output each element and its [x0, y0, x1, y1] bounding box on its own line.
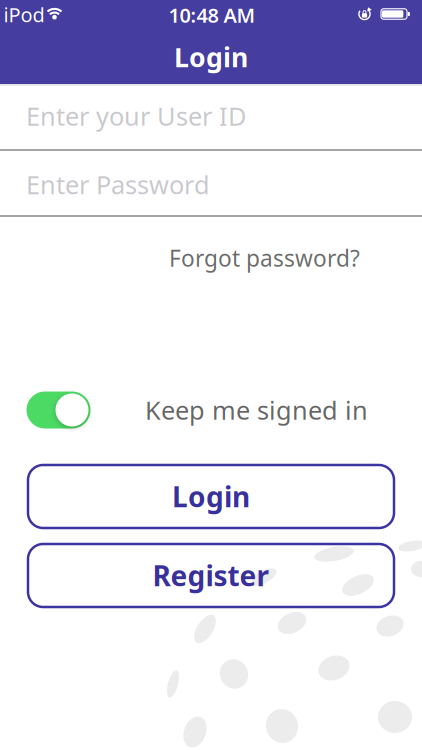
- button[interactable]: Enter your User ID: [0, 86, 422, 151]
- staticText: Register: [152, 557, 269, 594]
- staticText: Forgot password?: [169, 243, 360, 273]
- staticText: Login: [174, 39, 248, 75]
- staticText: iPod: [3, 1, 44, 28]
- button[interactable]: Login: [28, 465, 394, 528]
- staticText: 10:48 AM: [168, 2, 255, 28]
- staticText: Enter your User ID: [26, 99, 246, 133]
- staticText: Enter Password: [26, 168, 210, 201]
- staticText: Login: [172, 478, 250, 515]
- button[interactable]: Keep me signed in: [26, 391, 90, 428]
- button[interactable]: Enter Password: [0, 151, 422, 217]
- button[interactable]: Forgot password?: [169, 243, 360, 273]
- staticText: Keep me signed in: [145, 393, 368, 427]
- button[interactable]: Register: [28, 544, 394, 607]
